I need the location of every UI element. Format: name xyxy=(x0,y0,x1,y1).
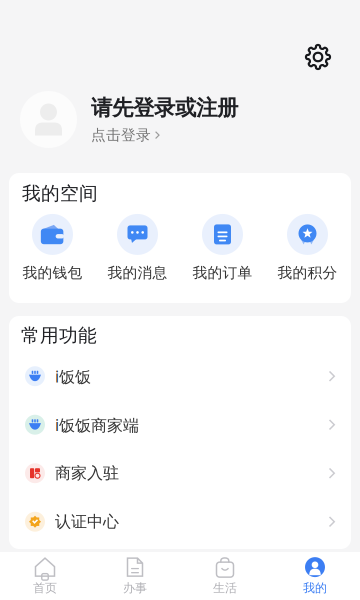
button[interactable]: 首页 xyxy=(0,552,90,600)
button[interactable]: 生活 xyxy=(180,552,270,600)
button[interactable]: 办事 xyxy=(90,552,180,600)
staticText: 请先登录或注册 xyxy=(91,95,238,121)
staticText: 我的 xyxy=(303,581,327,595)
button[interactable]: 认证中心 xyxy=(9,497,351,546)
button[interactable]: 请先登录或注册 xyxy=(0,91,360,148)
staticText: i饭饭 xyxy=(55,365,91,387)
button[interactable]: 我的消息 xyxy=(95,214,180,282)
staticText: 商家入驻 xyxy=(55,463,119,483)
button[interactable]: 商家入驻 xyxy=(9,449,351,497)
staticText: i饭饭商家端 xyxy=(55,414,139,435)
button[interactable]: 我的钱包 xyxy=(10,214,95,282)
staticText: 首页 xyxy=(33,581,57,595)
button[interactable]: 设置 xyxy=(296,35,340,79)
staticText: 办事 xyxy=(123,581,147,595)
button[interactable]: i饭饭商家端 xyxy=(9,400,351,449)
staticText: 我的订单 xyxy=(192,264,252,282)
staticText: 点击登录 xyxy=(91,126,151,144)
staticText: 我的消息 xyxy=(107,264,167,282)
button[interactable]: 我的 xyxy=(270,552,360,600)
staticText: 我的空间 xyxy=(22,182,98,205)
button[interactable]: 我的积分 xyxy=(265,214,350,282)
button[interactable]: i饭饭 xyxy=(9,352,351,400)
staticText: 我的钱包 xyxy=(22,264,82,282)
staticText: 认证中心 xyxy=(55,512,119,532)
staticText: 生活 xyxy=(213,581,237,595)
staticText: 常用功能 xyxy=(21,324,97,347)
staticText: 我的积分 xyxy=(277,264,337,282)
button[interactable]: 我的订单 xyxy=(180,214,265,282)
